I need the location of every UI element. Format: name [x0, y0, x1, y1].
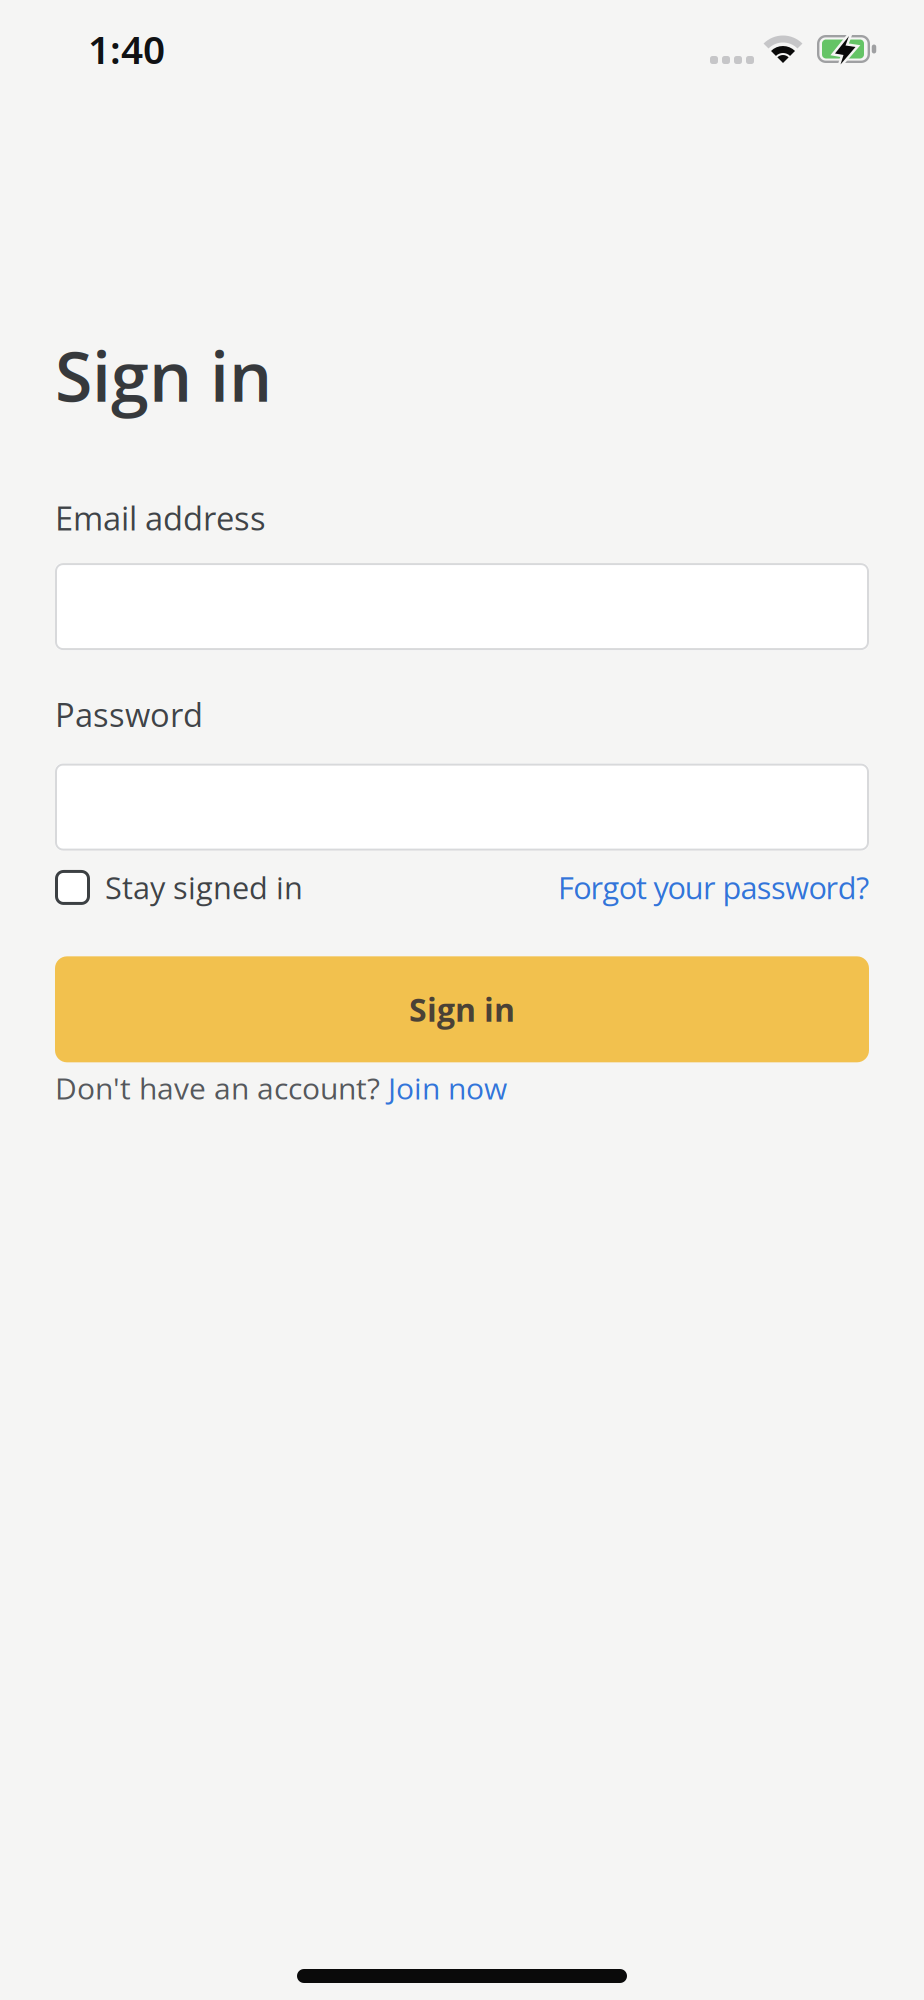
staticText: Sign in [409, 987, 515, 1031]
staticText: Forgot your password? [558, 867, 869, 908]
staticText: Sign in [55, 329, 272, 422]
staticText: Stay signed in [105, 867, 303, 908]
button[interactable]: Stay signed in [55, 867, 303, 908]
button[interactable]: Email address [55, 563, 869, 650]
staticText: Don't have an account? [55, 1067, 380, 1108]
button[interactable]: Join now [388, 1067, 507, 1108]
button[interactable]: Sign in [55, 956, 869, 1062]
button[interactable]: Forgot your password? [558, 867, 869, 908]
staticText: Password [55, 692, 203, 737]
button[interactable]: Password [55, 764, 869, 851]
staticText: Join now [388, 1067, 507, 1108]
staticText: Email address [55, 496, 266, 540]
staticText: 1:40 [88, 23, 165, 75]
